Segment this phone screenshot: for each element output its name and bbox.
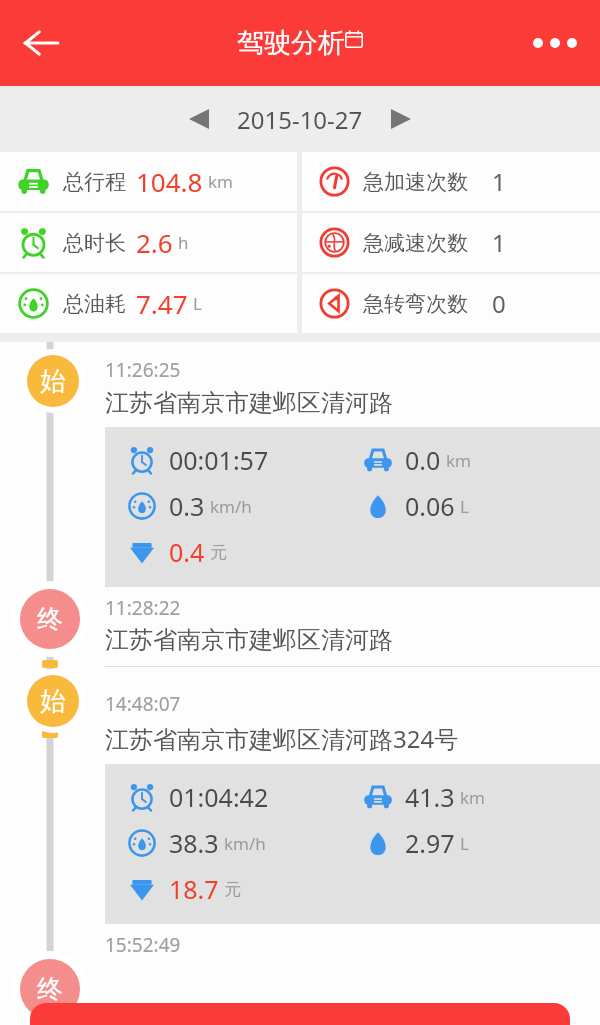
button[interactable]: 01:04:42 xyxy=(127,780,600,906)
staticText: km/h xyxy=(224,832,266,855)
button[interactable]: 总行程 xyxy=(0,152,297,211)
staticText: 始 xyxy=(40,685,66,718)
button[interactable]: 急减速次数 xyxy=(302,213,600,272)
staticText: 终 xyxy=(37,603,63,636)
staticText: 11:28:22 xyxy=(105,595,181,621)
staticText: 2015-10-27 xyxy=(237,103,363,136)
button[interactable]: More options xyxy=(522,10,588,76)
button[interactable]: 急加速次数 xyxy=(302,152,600,211)
button[interactable]: 始 xyxy=(21,349,85,413)
staticText: 急加速次数 xyxy=(363,169,468,195)
staticText: 江苏省南京市建邺区清河路 xyxy=(105,625,393,655)
staticText: h xyxy=(178,231,189,254)
staticText: 0.0 xyxy=(405,443,441,477)
button[interactable]: Back xyxy=(8,10,74,76)
staticText: 江苏省南京市建邺区清河路324号 xyxy=(105,722,459,755)
button[interactable]: 急转弯次数 xyxy=(302,274,600,333)
staticText: 18.7 xyxy=(169,872,219,906)
staticText: 急转弯次数 xyxy=(363,291,468,317)
staticText: 00:01:57 xyxy=(169,443,269,477)
staticText: 7.47 xyxy=(136,286,188,321)
staticText: 38.3 xyxy=(169,826,219,860)
button[interactable]: 总时长 xyxy=(0,213,297,272)
staticText: 总油耗 xyxy=(63,291,126,317)
staticText: 11:26:25 xyxy=(105,357,181,383)
staticText: L xyxy=(460,832,469,855)
staticText: 总行程 xyxy=(63,169,126,195)
staticText: km xyxy=(208,170,233,193)
staticText: 0.4 xyxy=(169,535,205,569)
staticText: 2.97 xyxy=(405,826,455,860)
staticText: km xyxy=(446,449,471,472)
staticText: km/h xyxy=(210,495,252,518)
button[interactable]: Next day xyxy=(377,95,425,143)
staticText: 104.8 xyxy=(136,164,203,199)
staticText: 总时长 xyxy=(63,230,126,256)
staticText: 元 xyxy=(210,542,227,563)
staticText: 14:48:07 xyxy=(105,691,181,717)
staticText: 41.3 xyxy=(405,780,455,814)
staticText: 15:52:49 xyxy=(105,932,181,958)
button[interactable]: 00:01:57 xyxy=(127,443,600,569)
staticText: 元 xyxy=(224,879,241,900)
staticText: 驾驶分析 xyxy=(237,26,345,60)
staticText: 江苏省南京市建邺区清河路 xyxy=(105,388,393,418)
staticText: 始 xyxy=(40,365,66,398)
button[interactable]: 始 xyxy=(21,669,85,733)
staticText: 2.6 xyxy=(136,225,173,260)
staticText: 终 xyxy=(37,973,63,1006)
staticText: L xyxy=(460,495,469,518)
button[interactable]: 总油耗 xyxy=(0,274,297,333)
staticText: 1 xyxy=(492,226,506,259)
staticText: 急减速次数 xyxy=(363,230,468,256)
staticText: km xyxy=(460,786,485,809)
staticText: 0.06 xyxy=(405,489,455,523)
staticText: 0 xyxy=(492,287,506,320)
staticText: 1 xyxy=(492,165,506,198)
staticText: 0.3 xyxy=(169,489,205,523)
button[interactable]: Previous day xyxy=(175,95,223,143)
staticText: L xyxy=(193,292,202,315)
staticText: 01:04:42 xyxy=(169,780,269,814)
